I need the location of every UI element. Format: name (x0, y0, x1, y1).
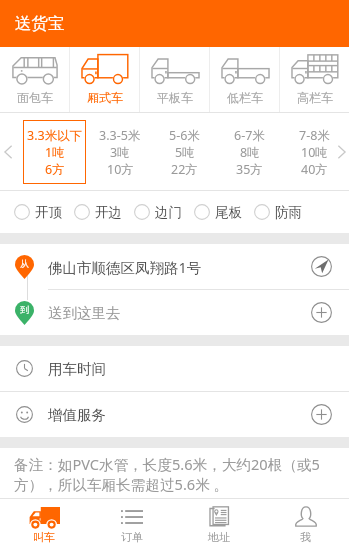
staticText: 面包车 (17, 90, 53, 105)
staticText: 高栏车 (297, 90, 333, 105)
staticText: 防雨 (275, 204, 302, 221)
button[interactable]: 高栏车 (280, 47, 349, 112)
staticText: 3吨 (110, 144, 130, 161)
button[interactable]: 从 (0, 244, 349, 289)
staticText: 用车时间 (48, 360, 106, 378)
staticText: 叫车 (33, 530, 55, 544)
staticText: 3.3-5米 (99, 127, 141, 144)
staticText: 6-7米 (234, 127, 265, 144)
button[interactable]: 开边 (74, 191, 134, 233)
staticText: 地址 (208, 530, 230, 544)
button[interactable]: 订单 (88, 499, 175, 550)
button[interactable]: 下一页 (334, 145, 348, 159)
button[interactable]: 边门 (134, 191, 194, 233)
button[interactable]: 7-8米 (282, 113, 347, 190)
staticText: 开顶 (35, 204, 62, 221)
staticText: 佛山市顺德区凤翔路1号 (48, 257, 311, 277)
staticText: 开边 (95, 204, 122, 221)
staticText: 我 (300, 530, 311, 544)
button[interactable]: 到 (0, 290, 349, 335)
button[interactable]: 厢式车 (70, 47, 139, 112)
staticText: 5-6米 (169, 127, 200, 144)
other: 添加目的地 (311, 302, 332, 323)
staticText: 低栏车 (227, 90, 263, 105)
staticText: 边门 (155, 204, 182, 221)
button[interactable]: 5-6米 (152, 113, 217, 190)
staticText: 订单 (121, 530, 143, 544)
staticText: 3.3米以下 (27, 127, 83, 144)
staticText: 备注：如PVC水管，长度5.6米，大约20根（或5方），所以车厢长需超过5.6米… (14, 454, 339, 495)
button[interactable]: 开顶 (14, 191, 74, 233)
staticText: 1吨 (45, 144, 65, 161)
button[interactable]: 3.3米以下 (22, 113, 87, 190)
staticText: 增值服务 (48, 406, 311, 424)
other: 增加服务 (311, 404, 332, 425)
staticText: 到 (20, 304, 29, 315)
staticText: 送货宝 (15, 13, 65, 34)
staticText: 10吨 (301, 144, 328, 161)
staticText: 厢式车 (87, 90, 123, 105)
button[interactable]: 上一页 (1, 145, 15, 159)
staticText: 35方 (236, 161, 263, 178)
button[interactable]: 用车时间 (0, 346, 349, 391)
staticText: 22方 (171, 161, 198, 178)
button[interactable]: 6-7米 (217, 113, 282, 190)
staticText: 从 (20, 258, 29, 269)
staticText: 10方 (107, 161, 134, 178)
button[interactable]: 低栏车 (210, 47, 279, 112)
other: 定位 (311, 256, 332, 277)
button[interactable]: 防雨 (254, 191, 314, 233)
button[interactable]: 叫车 (0, 499, 88, 550)
staticText: 平板车 (157, 90, 193, 105)
button[interactable]: 地址 (175, 499, 262, 550)
button[interactable]: 3.3-5米 (87, 113, 152, 190)
staticText: 尾板 (215, 204, 242, 221)
button[interactable]: 我 (262, 499, 349, 550)
staticText: 7-8米 (299, 127, 330, 144)
staticText: 8吨 (240, 144, 260, 161)
button[interactable]: 平板车 (140, 47, 209, 112)
button[interactable]: 尾板 (194, 191, 254, 233)
staticText: 送到这里去 (48, 304, 311, 322)
staticText: 5吨 (175, 144, 195, 161)
button[interactable]: 增值服务 (0, 392, 349, 437)
staticText: 6方 (45, 161, 65, 178)
staticText: 40方 (301, 161, 328, 178)
button[interactable]: 面包车 (0, 47, 69, 112)
